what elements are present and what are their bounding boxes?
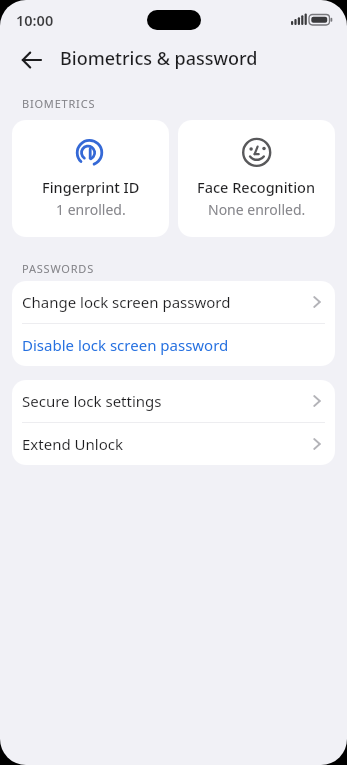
staticText: Change lock screen password <box>22 292 231 312</box>
button[interactable]: Disable lock screen password <box>12 324 335 366</box>
button[interactable]: Fingerprint ID <box>12 120 169 237</box>
button[interactable]: Change lock screen password <box>12 281 335 323</box>
staticText: 10:00 <box>16 10 54 30</box>
staticText: 1 enrolled. <box>56 200 126 219</box>
staticText: BIOMETRICS <box>22 96 96 111</box>
button[interactable]: Face Recognition <box>178 120 335 237</box>
staticText: Extend Unlock <box>22 434 123 454</box>
staticText: Face Recognition <box>197 177 316 197</box>
button[interactable]: Secure lock settings <box>12 380 335 422</box>
staticText: Secure lock settings <box>22 391 162 411</box>
staticText: None enrolled. <box>208 200 306 219</box>
button[interactable]: Extend Unlock <box>12 423 335 465</box>
staticText: Biometrics & password <box>60 46 258 71</box>
staticText: PASSWORDS <box>22 261 95 276</box>
staticText: Disable lock screen password <box>22 335 229 355</box>
button[interactable]: Biometrics & password <box>0 40 347 80</box>
staticText: Fingerprint ID <box>42 177 140 197</box>
